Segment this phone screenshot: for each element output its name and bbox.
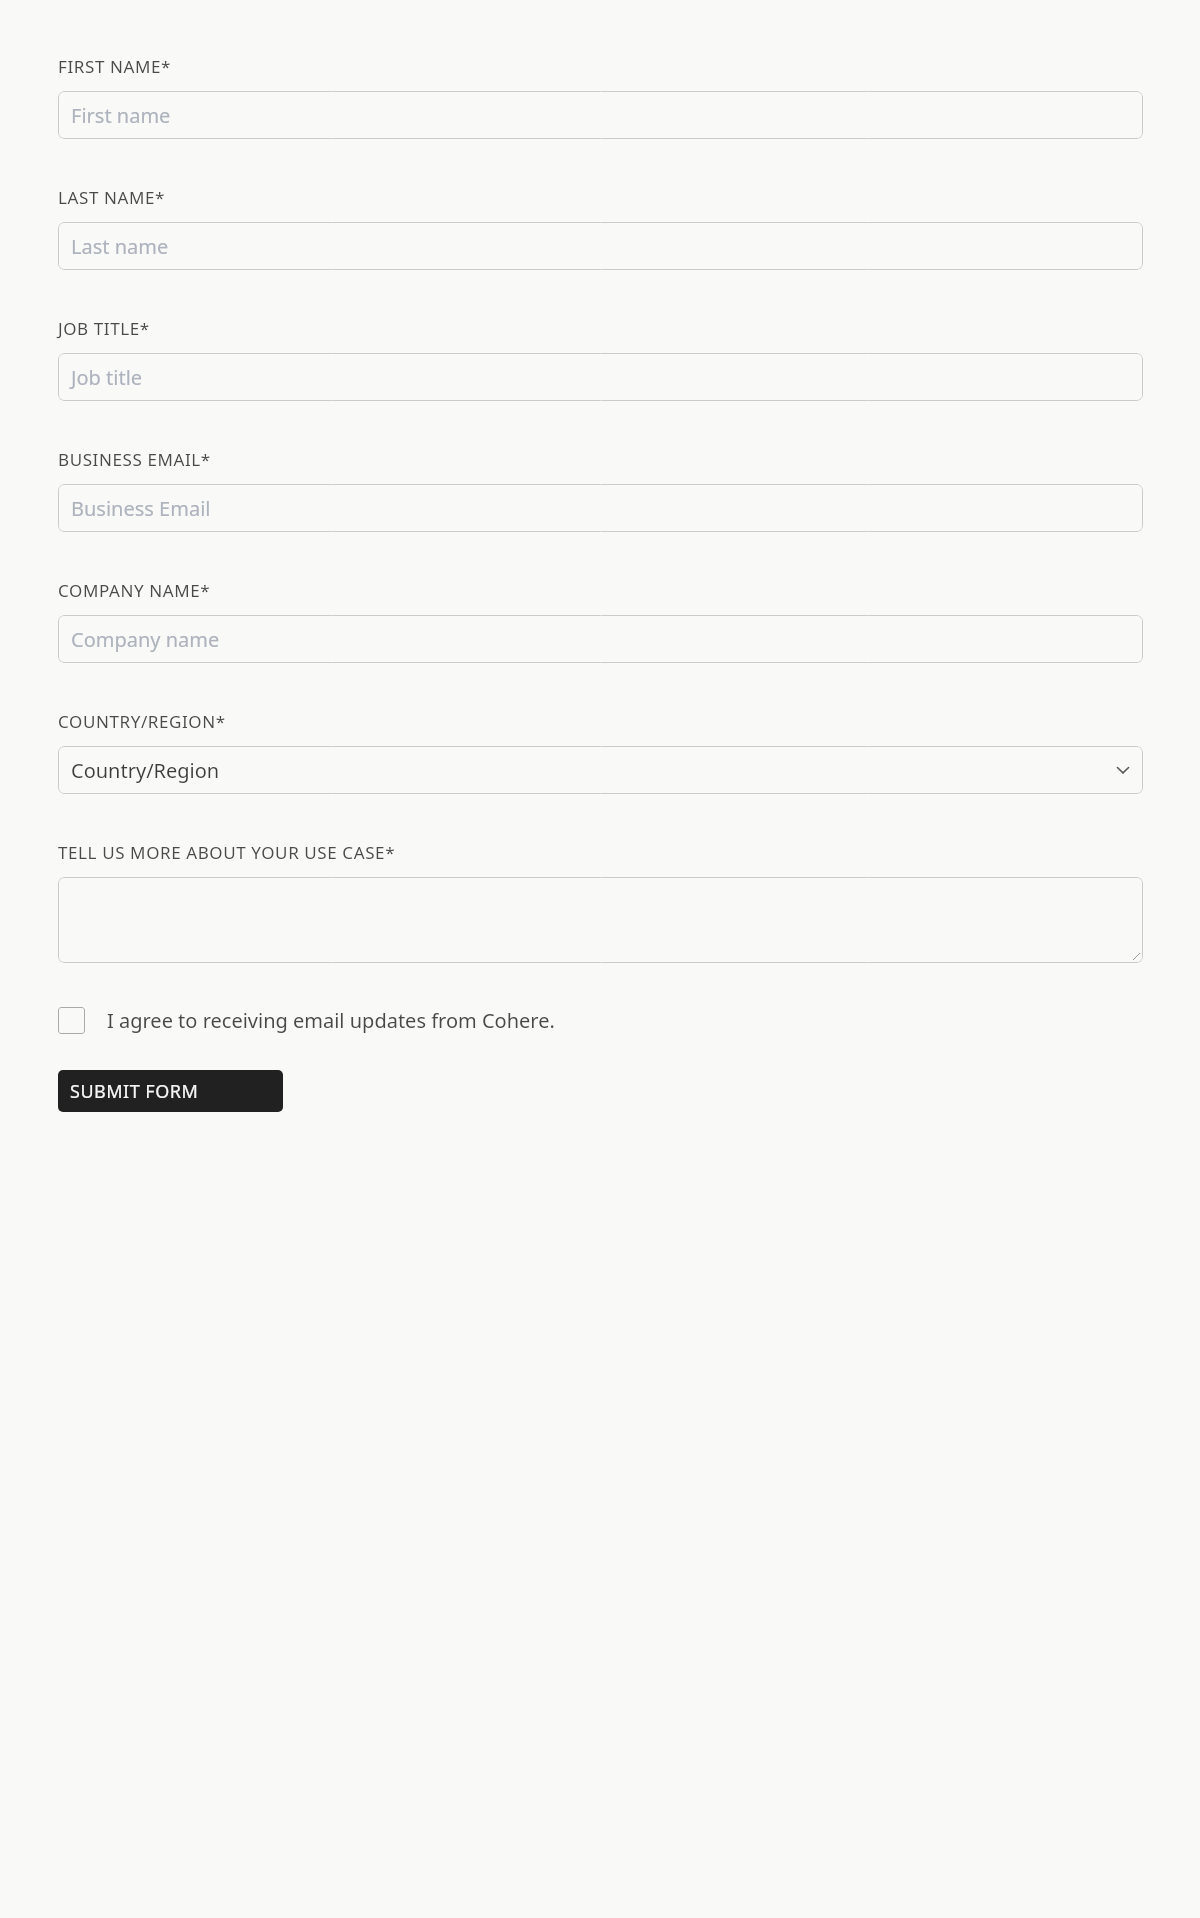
staticText: Company name — [71, 626, 220, 653]
staticText: I agree to receiving email updates from … — [107, 1007, 555, 1034]
staticText: Job title — [71, 364, 143, 391]
staticText: Country/Region — [71, 757, 220, 784]
button[interactable]: Company name — [58, 615, 1143, 663]
staticText: SUBMIT FORM — [70, 1079, 199, 1104]
button[interactable]: Business Email — [58, 484, 1143, 532]
staticText: Business Email — [71, 495, 211, 522]
other: Agree to email updates — [58, 1007, 85, 1034]
button[interactable]: SUBMIT FORM — [58, 1070, 283, 1112]
staticText: Last name — [71, 233, 169, 260]
staticText: TELL US MORE ABOUT YOUR USE CASE* — [58, 841, 396, 864]
staticText: JOB TITLE* — [58, 317, 150, 340]
button[interactable]: Last name — [58, 222, 1143, 270]
button[interactable]: First name — [58, 91, 1143, 139]
staticText: COMPANY NAME* — [58, 579, 211, 602]
staticText: LAST NAME* — [58, 186, 165, 209]
staticText: COUNTRY/REGION* — [58, 710, 226, 733]
button[interactable]: Agree to email updates — [58, 1007, 1143, 1034]
button[interactable]: Job title — [58, 353, 1143, 401]
staticText: FIRST NAME* — [58, 55, 171, 78]
button[interactable]: Country/Region — [58, 746, 1143, 794]
button[interactable] — [58, 877, 1143, 963]
staticText: First name — [71, 102, 171, 129]
staticText: BUSINESS EMAIL* — [58, 448, 211, 471]
